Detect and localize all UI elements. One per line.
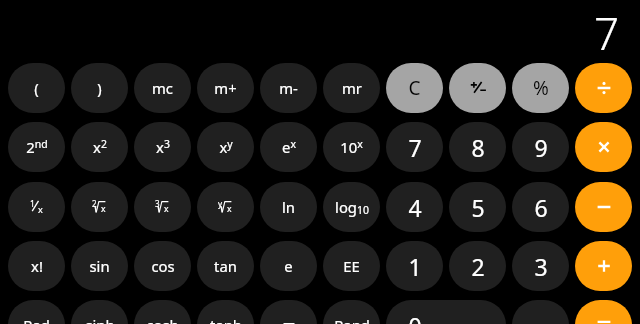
button[interactable]: close parenthesis bbox=[71, 63, 128, 113]
button[interactable]: x squared bbox=[71, 122, 128, 172]
button[interactable]: memory recall bbox=[323, 63, 380, 113]
button[interactable]: exponent bbox=[323, 241, 380, 291]
staticText: ln bbox=[282, 197, 295, 217]
staticText: 3 bbox=[155, 198, 160, 209]
button[interactable]: three bbox=[512, 241, 569, 291]
staticText: ( bbox=[34, 78, 39, 98]
staticText: x! bbox=[31, 256, 43, 276]
staticText: e bbox=[284, 256, 293, 276]
button[interactable]: random bbox=[323, 300, 380, 324]
staticText: 2nd bbox=[26, 137, 48, 158]
staticText: cos bbox=[151, 256, 175, 276]
staticText: sin bbox=[89, 256, 110, 276]
button[interactable]: hyperbolic tangent bbox=[197, 300, 254, 324]
button[interactable]: memory add bbox=[197, 63, 254, 113]
button[interactable]: six bbox=[512, 182, 569, 232]
staticText: % bbox=[533, 75, 549, 101]
staticText: x bbox=[38, 203, 43, 215]
button[interactable]: log base ten bbox=[323, 182, 380, 232]
staticText: 0 bbox=[408, 310, 422, 324]
button[interactable]: radians bbox=[8, 300, 65, 324]
button[interactable]: one bbox=[386, 241, 443, 291]
button[interactable]: clear bbox=[386, 63, 443, 113]
staticText: Rad bbox=[23, 315, 50, 324]
button[interactable]: memory subtract bbox=[260, 63, 317, 113]
button[interactable]: sine bbox=[71, 241, 128, 291]
staticText: x3 bbox=[156, 137, 170, 158]
button[interactable]: equals bbox=[575, 300, 632, 324]
staticText: mc bbox=[152, 78, 173, 98]
staticText: 4 bbox=[408, 192, 422, 223]
staticText: 8 bbox=[471, 132, 485, 163]
staticText: π bbox=[283, 314, 295, 324]
staticText: Rand bbox=[334, 315, 370, 324]
staticText: x2 bbox=[93, 137, 107, 158]
staticText: 2 bbox=[471, 251, 485, 282]
staticText: x bbox=[101, 203, 106, 215]
staticText: ex bbox=[282, 137, 296, 158]
button[interactable]: y root of x bbox=[197, 182, 254, 232]
button[interactable]: hyperbolic sine bbox=[71, 300, 128, 324]
staticText: cosh bbox=[146, 315, 179, 324]
button[interactable]: seven bbox=[386, 122, 443, 172]
staticText: x bbox=[227, 203, 232, 215]
staticText: 1 bbox=[408, 251, 422, 282]
staticText: sinh bbox=[85, 315, 115, 324]
button[interactable]: five bbox=[449, 182, 506, 232]
button[interactable]: e to the power x bbox=[260, 122, 317, 172]
staticText: 2 bbox=[92, 198, 97, 209]
button[interactable]: add bbox=[575, 241, 632, 291]
button[interactable]: two bbox=[449, 241, 506, 291]
button[interactable]: tangent bbox=[197, 241, 254, 291]
staticText: ) bbox=[97, 78, 102, 98]
button[interactable]: pi bbox=[260, 300, 317, 324]
staticText: xy bbox=[219, 137, 233, 158]
staticText: 10x bbox=[340, 137, 363, 158]
button[interactable]: x to the power y bbox=[197, 122, 254, 172]
button[interactable]: subtract bbox=[575, 182, 632, 232]
button[interactable]: ten to the power x bbox=[323, 122, 380, 172]
staticText: tanh bbox=[210, 315, 242, 324]
button[interactable]: cosine bbox=[134, 241, 191, 291]
staticText: mr bbox=[342, 78, 362, 98]
staticText: 7 bbox=[408, 132, 422, 163]
staticText: tan bbox=[214, 256, 237, 276]
button[interactable]: divide bbox=[575, 63, 632, 113]
button[interactable]: eight bbox=[449, 122, 506, 172]
staticText: y bbox=[218, 198, 223, 209]
staticText: log10 bbox=[335, 197, 369, 217]
button[interactable]: four bbox=[386, 182, 443, 232]
button[interactable]: factorial bbox=[8, 241, 65, 291]
staticText: m- bbox=[279, 78, 298, 98]
staticText: 9 bbox=[534, 132, 548, 163]
button[interactable]: plus minus bbox=[449, 63, 506, 113]
button[interactable]: cube root bbox=[134, 182, 191, 232]
button[interactable]: zero bbox=[386, 300, 506, 324]
staticText: 6 bbox=[534, 192, 548, 223]
staticText: m+ bbox=[214, 78, 237, 98]
button[interactable]: x cubed bbox=[134, 122, 191, 172]
button[interactable]: second bbox=[8, 122, 65, 172]
button[interactable]: one over x bbox=[8, 182, 65, 232]
button[interactable]: decimal point bbox=[512, 300, 569, 324]
staticText: 5 bbox=[471, 192, 485, 223]
button[interactable]: nine bbox=[512, 122, 569, 172]
staticText: x bbox=[164, 203, 169, 215]
staticText: 1 bbox=[30, 198, 35, 210]
staticText: 7 bbox=[594, 3, 620, 63]
button[interactable]: natural log bbox=[260, 182, 317, 232]
staticText: EE bbox=[343, 256, 360, 276]
staticText: C bbox=[408, 75, 421, 101]
button[interactable]: square root bbox=[71, 182, 128, 232]
button[interactable]: multiply bbox=[575, 122, 632, 172]
button[interactable]: euler number bbox=[260, 241, 317, 291]
button[interactable]: hyperbolic cosine bbox=[134, 300, 191, 324]
button[interactable]: memory clear bbox=[134, 63, 191, 113]
button[interactable]: percent bbox=[512, 63, 569, 113]
staticText: 3 bbox=[534, 251, 548, 282]
button[interactable]: open parenthesis bbox=[8, 63, 65, 113]
